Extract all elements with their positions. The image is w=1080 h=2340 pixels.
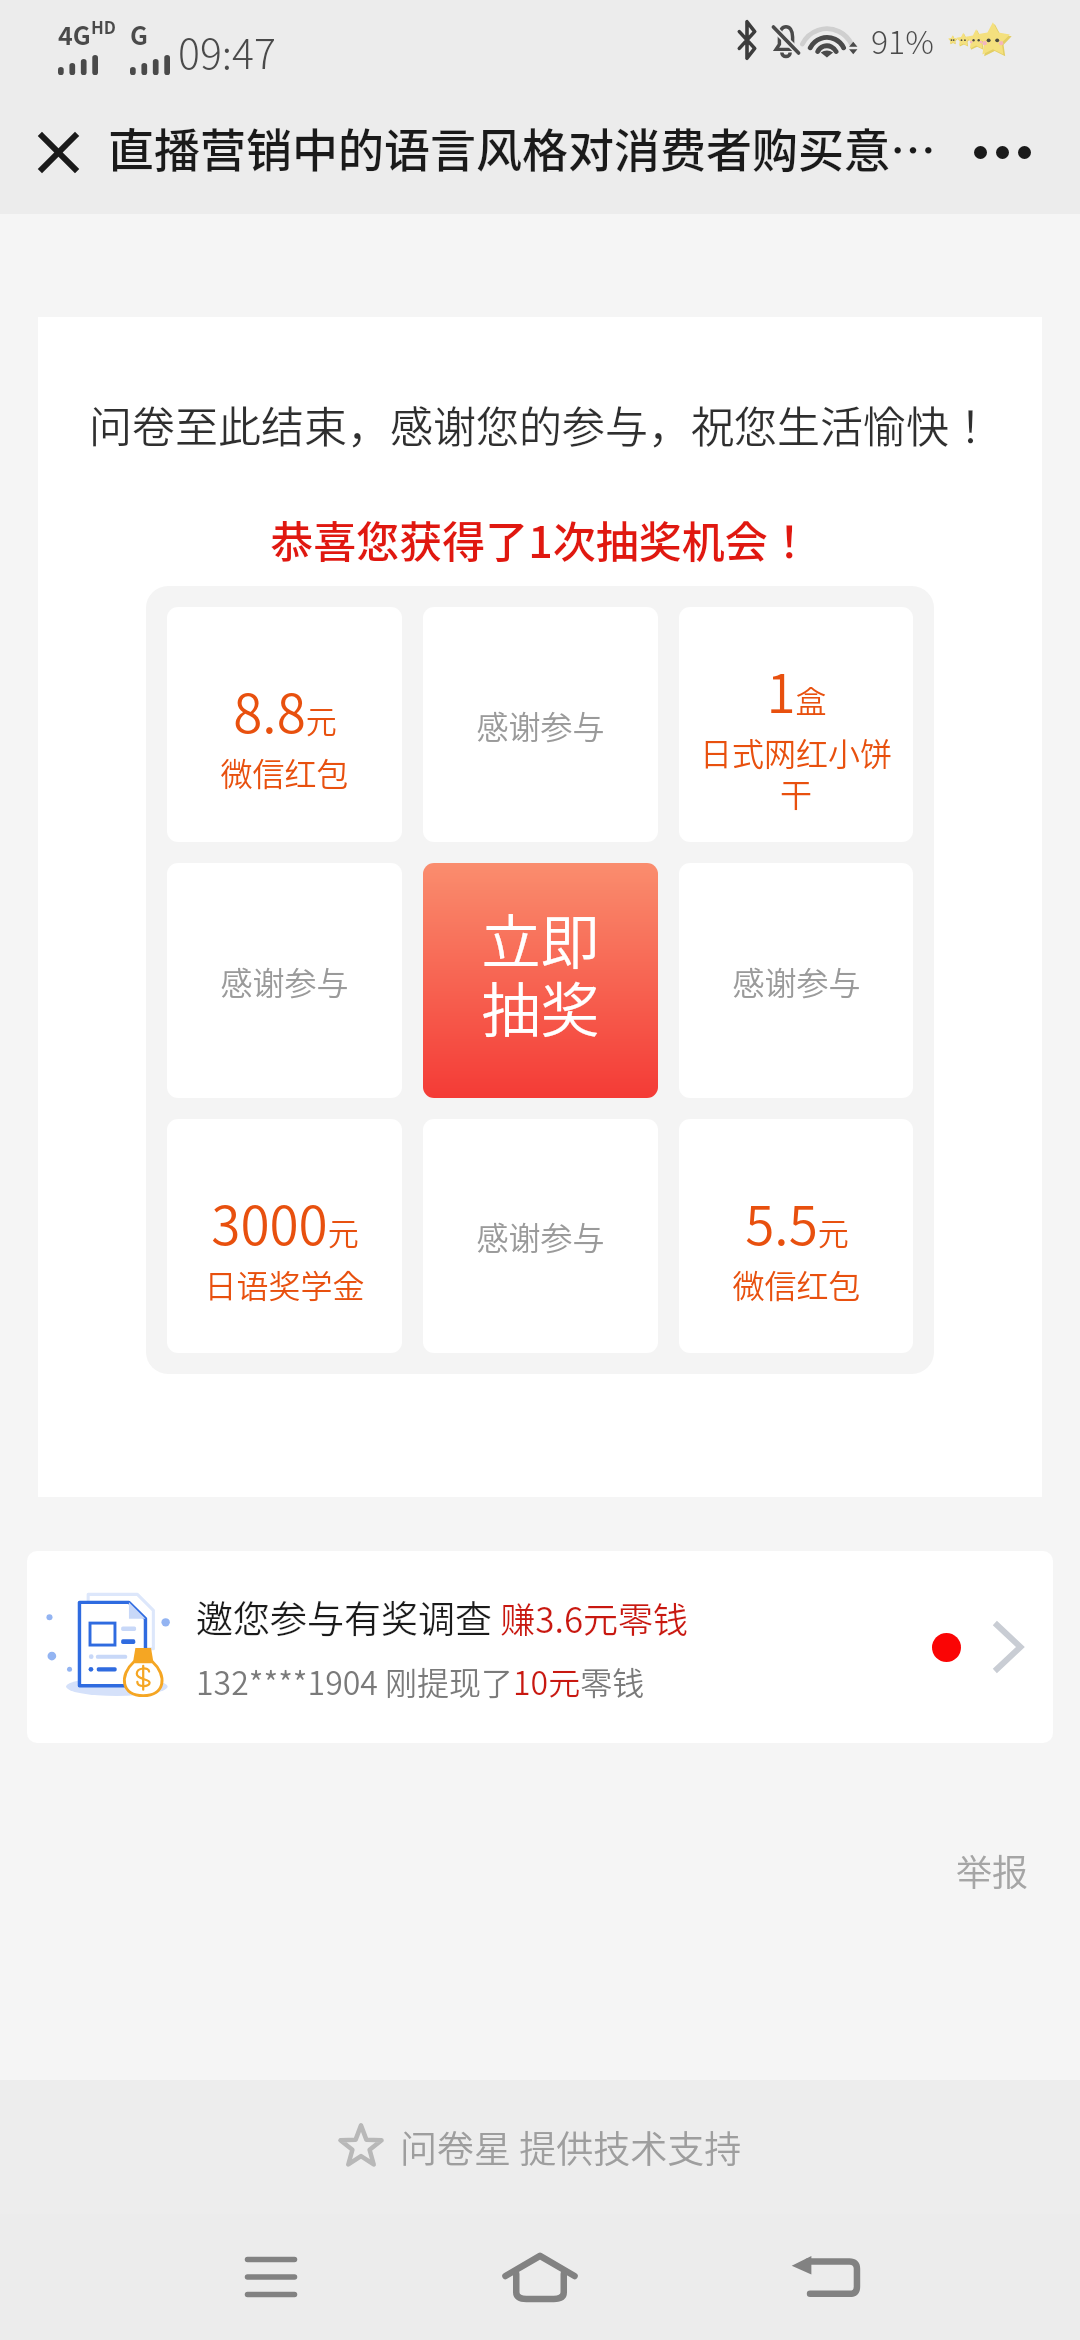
button[interactable]: More options bbox=[957, 107, 1047, 197]
staticText: 问卷星 提供技术支持 bbox=[400, 2120, 742, 2174]
staticText: 4G bbox=[58, 16, 91, 52]
button[interactable]: 举报 bbox=[948, 1836, 1037, 1904]
staticText: 微信红包 bbox=[220, 749, 349, 795]
button[interactable]: 3000元 bbox=[167, 1119, 402, 1353]
staticText: 直播营销中的语言风格对消费者购买意… bbox=[108, 114, 936, 181]
staticText: 感谢参与 bbox=[732, 958, 861, 1004]
staticText: 感谢参与 bbox=[476, 1213, 605, 1259]
staticText: HD bbox=[91, 14, 117, 39]
staticText: 恭喜您获得了1次抽奖机会！ bbox=[270, 508, 811, 570]
button[interactable]: 感谢参与 bbox=[167, 863, 402, 1098]
staticText: 邀您参与有奖调查 赚3.6元零钱 bbox=[196, 1590, 689, 1644]
button[interactable]: 感谢参与 bbox=[423, 1119, 658, 1353]
button[interactable]: Close bbox=[21, 115, 96, 190]
staticText: 立即 抽奖 bbox=[481, 896, 600, 1049]
staticText: 132****1904 刚提现了10元零钱 bbox=[196, 1658, 645, 1704]
button[interactable]: 感谢参与 bbox=[679, 863, 913, 1098]
staticText: G bbox=[130, 16, 148, 52]
staticText: 91% bbox=[871, 17, 934, 63]
staticText: 3000元 bbox=[211, 1184, 359, 1261]
button[interactable]: 1盒 bbox=[679, 607, 913, 842]
staticText: 举报 bbox=[956, 1844, 1029, 1896]
button[interactable]: 邀您参与有奖调查 赚3.6元零钱 bbox=[27, 1551, 1053, 1743]
staticText: 1盒 bbox=[766, 652, 827, 729]
button[interactable]: 感谢参与 bbox=[423, 607, 658, 842]
staticText: 日语奖学金 bbox=[204, 1261, 365, 1307]
staticText: 09:47 bbox=[178, 21, 276, 80]
button[interactable]: 5.5元 bbox=[679, 1119, 913, 1353]
staticText: 5.5元 bbox=[745, 1184, 849, 1261]
button[interactable]: 立即 抽奖 bbox=[423, 863, 658, 1098]
button[interactable]: Home bbox=[480, 2217, 600, 2337]
button[interactable]: Recent apps bbox=[211, 2217, 331, 2337]
button[interactable]: 8.8元 bbox=[167, 607, 402, 842]
staticText: 感谢参与 bbox=[220, 958, 349, 1004]
staticText: 日式网红小饼干 bbox=[687, 729, 905, 816]
staticText: 8.8元 bbox=[233, 672, 337, 749]
button[interactable]: Back bbox=[765, 2217, 885, 2337]
staticText: 问卷至此结束，感谢您的参与，祝您生活愉快！ bbox=[89, 393, 992, 455]
staticText: 感谢参与 bbox=[476, 702, 605, 748]
staticText: 微信红包 bbox=[732, 1261, 861, 1307]
